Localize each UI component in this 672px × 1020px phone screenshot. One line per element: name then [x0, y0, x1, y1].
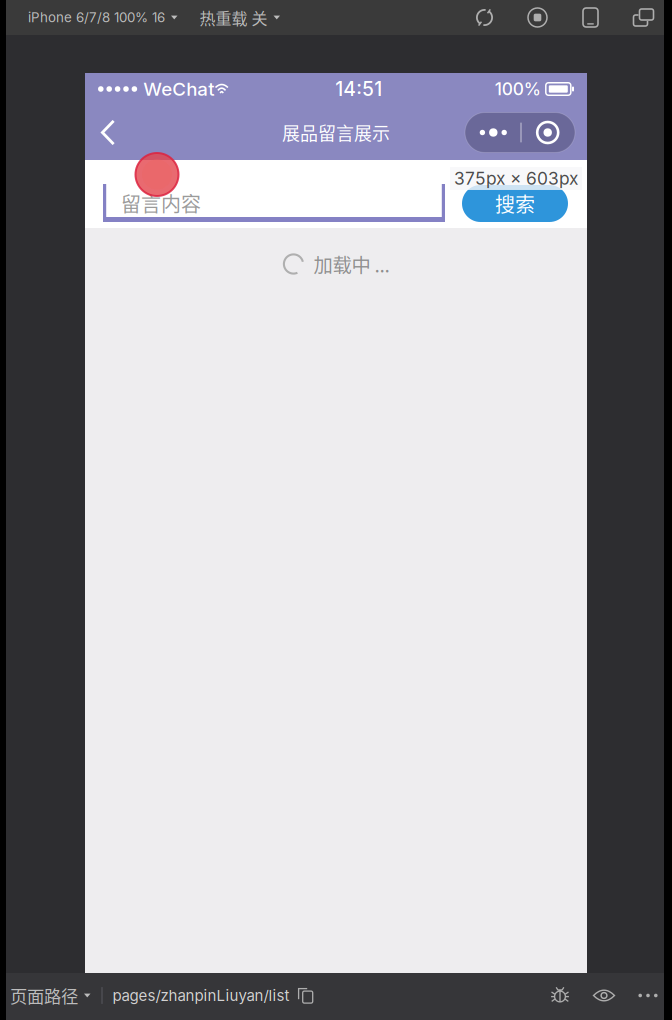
button[interactable]: Debug	[538, 973, 582, 1018]
staticText: 热重载 关	[199, 6, 267, 29]
button[interactable]: 页面路径	[0, 973, 101, 1018]
staticText: 展品留言展示	[282, 119, 390, 146]
staticText: 加载中 ...	[313, 250, 389, 278]
button[interactable]: Device	[564, 0, 617, 35]
button[interactable]: Preview	[582, 973, 626, 1018]
button[interactable]: More	[626, 973, 670, 1018]
button[interactable]: 热重载 关	[189, 0, 292, 35]
staticText: 100%	[495, 78, 541, 99]
staticText: 375px × 603px	[454, 168, 578, 189]
button[interactable]: Copy path	[292, 973, 318, 1018]
button[interactable]: Detach window	[617, 0, 670, 35]
button[interactable]: Refresh	[458, 0, 511, 35]
staticText: 页面路径	[10, 983, 78, 1008]
button[interactable]: Record	[511, 0, 564, 35]
staticText: WeChat	[143, 78, 214, 100]
button[interactable]: iPhone 6/7/8 100% 16	[0, 0, 189, 35]
staticText: 14:51	[335, 77, 382, 101]
button[interactable]: Back	[85, 105, 131, 160]
staticText: 搜索	[495, 189, 535, 218]
staticText: 留言内容	[121, 188, 201, 217]
button[interactable]: 搜索	[462, 185, 568, 222]
staticText: iPhone 6/7/8 100% 16	[28, 9, 165, 25]
staticText: pages/zhanpinLiuyan/list	[112, 986, 289, 1005]
button[interactable]: Mini program menu	[465, 112, 575, 152]
